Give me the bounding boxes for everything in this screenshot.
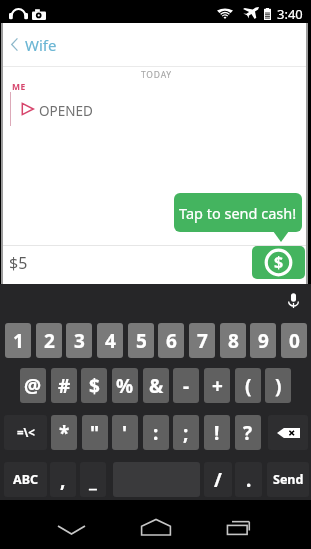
button[interactable]: ' [112, 415, 138, 450]
staticText: , [60, 467, 66, 493]
button[interactable]: ) [265, 368, 291, 403]
staticText: 1 [13, 328, 24, 354]
staticText: $ [274, 251, 284, 273]
button[interactable]: 8 [220, 323, 246, 358]
button[interactable]: 3 [66, 323, 92, 358]
staticText: 9 [258, 328, 269, 354]
button[interactable]: Recent apps [222, 511, 254, 543]
staticText: $5 [9, 252, 28, 274]
staticText: - [183, 373, 190, 399]
staticText: Wife [25, 35, 57, 55]
button[interactable]: Tap to send cash! [174, 193, 302, 232]
button[interactable]: $ [81, 368, 107, 403]
button[interactable]: . [235, 462, 262, 497]
staticText: 8 [228, 328, 239, 354]
button[interactable]: ( [235, 368, 261, 403]
staticText: % [116, 373, 134, 399]
button[interactable]: ? [235, 415, 261, 450]
staticText: ) [275, 373, 282, 399]
staticText: 3:40 [277, 5, 303, 23]
staticText: Tap to send cash! [179, 203, 297, 223]
button[interactable]: 0 [281, 323, 307, 358]
button[interactable]: + [204, 368, 230, 403]
button[interactable]: 1 [5, 323, 31, 358]
button[interactable]: : [143, 415, 169, 450]
staticText: $ [89, 373, 100, 399]
button[interactable]: Wife [1, 23, 308, 66]
staticText: 3 [74, 328, 85, 354]
staticText: . [246, 467, 252, 493]
button[interactable]: 6 [158, 323, 184, 358]
button[interactable]: Voice input [286, 291, 301, 310]
staticText: ( [245, 373, 252, 399]
staticText: : [153, 420, 159, 446]
staticText: OPENED [39, 102, 93, 120]
staticText: =\< [17, 425, 35, 441]
button[interactable]: 4 [97, 323, 123, 358]
button[interactable]: 2 [36, 323, 62, 358]
button[interactable]: " [82, 415, 108, 450]
staticText: / [214, 467, 222, 493]
staticText: _ [89, 467, 97, 493]
button[interactable]: 9 [250, 323, 276, 358]
button[interactable]: Send cash [252, 246, 305, 279]
staticText: + [212, 373, 223, 399]
staticText: 7 [197, 328, 208, 354]
staticText: 0 [289, 328, 300, 354]
staticText: ' [122, 420, 128, 446]
button[interactable]: % [112, 368, 138, 403]
button[interactable]: _ [80, 462, 106, 497]
staticText: * [59, 420, 70, 446]
staticText: ; [183, 420, 189, 446]
staticText: @ [24, 373, 42, 399]
staticText: ME [12, 81, 26, 93]
staticText: # [58, 373, 71, 399]
staticText: 2 [44, 328, 55, 354]
button[interactable]: - [173, 368, 199, 403]
staticText: & [149, 373, 164, 399]
staticText: ! [214, 420, 220, 446]
button[interactable]: / [204, 462, 232, 497]
staticText: 4 [105, 328, 116, 354]
button[interactable]: # [51, 368, 77, 403]
button[interactable]: Hide keyboard [55, 519, 88, 541]
button[interactable]: & [143, 368, 169, 403]
button[interactable]: ; [173, 415, 199, 450]
staticText: 6 [166, 328, 177, 354]
button[interactable]: Backspace [268, 415, 308, 450]
button[interactable]: Home [140, 511, 172, 543]
button[interactable]: =\< [4, 415, 47, 450]
button[interactable]: 7 [189, 323, 215, 358]
button[interactable]: @ [20, 368, 46, 403]
staticText: Send [273, 471, 304, 488]
staticText: ? [243, 420, 253, 446]
button[interactable]: , [50, 462, 76, 497]
button[interactable]: 5 [128, 323, 154, 358]
button[interactable]: ABC [4, 462, 47, 497]
button[interactable]: ! [204, 415, 230, 450]
staticText: " [90, 420, 100, 446]
staticText: TODAY [141, 69, 172, 81]
staticText: ABC [13, 471, 38, 488]
staticText: 5 [136, 328, 147, 354]
button[interactable]: * [51, 415, 77, 450]
button[interactable]: Send [267, 462, 309, 497]
